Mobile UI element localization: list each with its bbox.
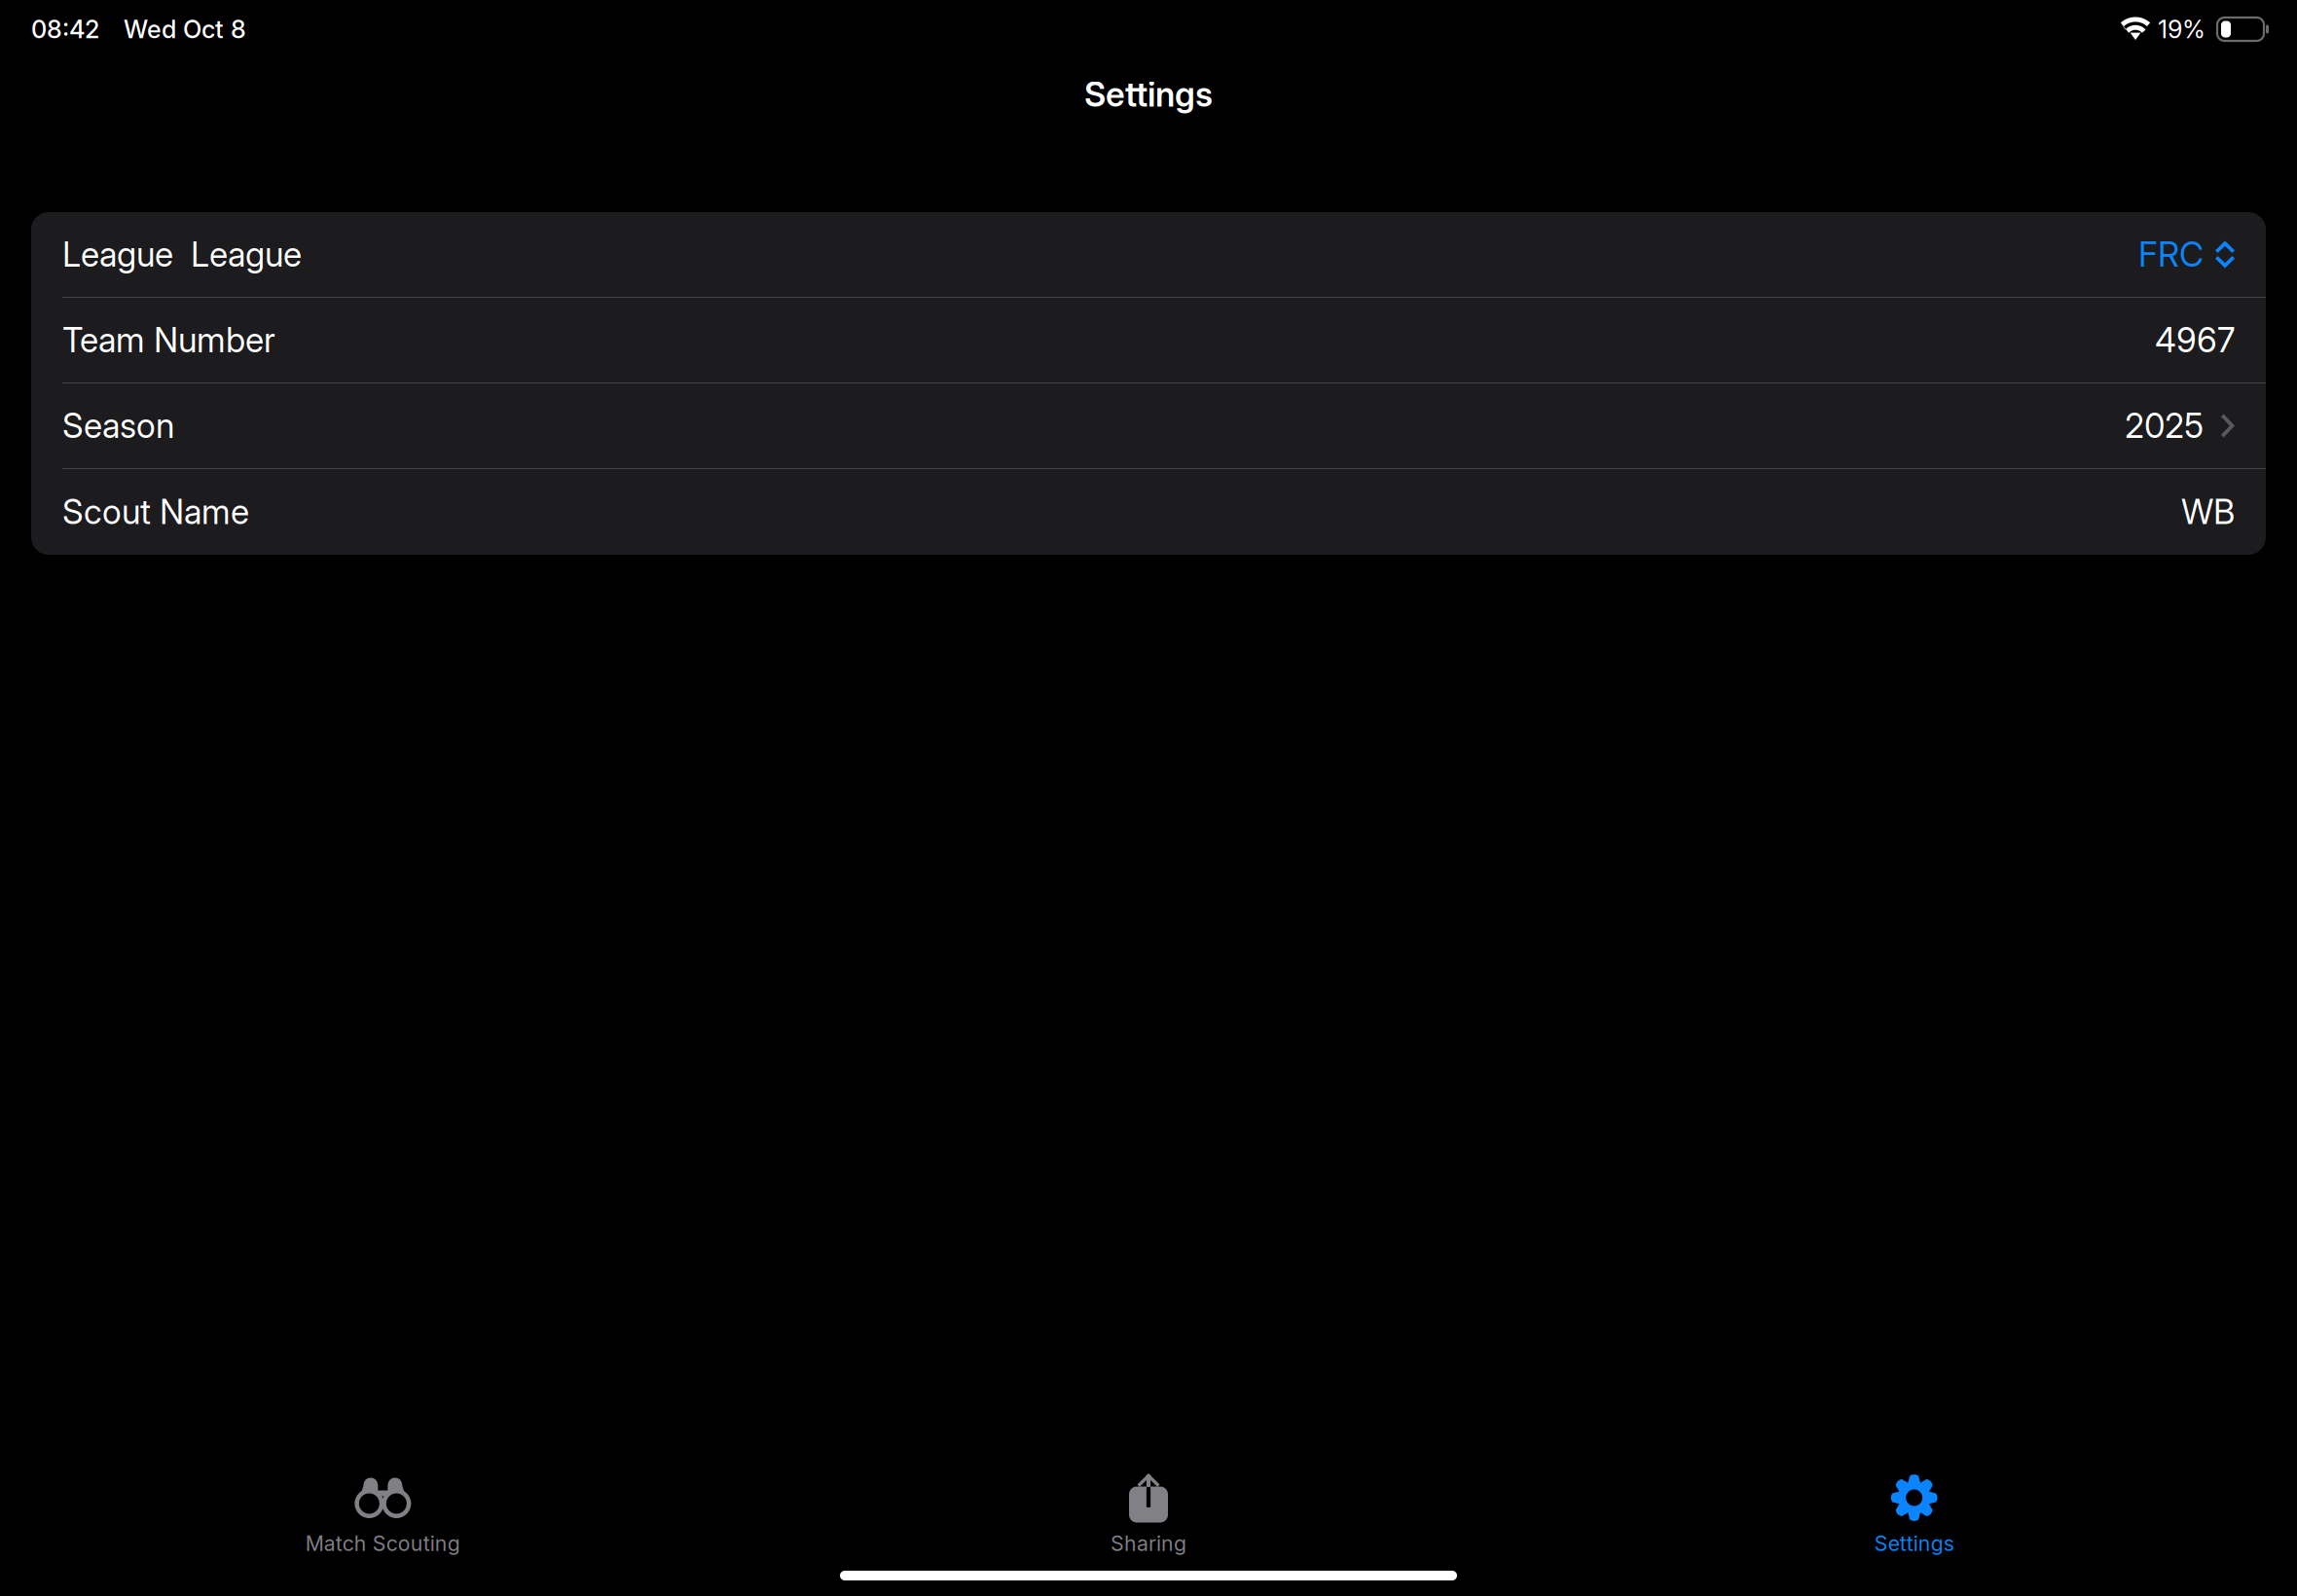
staticText: Settings <box>1874 1531 1954 1556</box>
staticText: Sharing <box>1111 1531 1186 1556</box>
button[interactable]: Match Scouting <box>0 1472 766 1566</box>
staticText: Team Number <box>62 320 275 360</box>
staticText: FRC <box>2138 234 2204 275</box>
staticText: Wed Oct 8 <box>124 14 246 44</box>
staticText: 4967 <box>2155 320 2235 360</box>
staticText: League League <box>62 234 302 275</box>
button[interactable]: Settings <box>1531 1472 2297 1566</box>
staticText: Match Scouting <box>305 1531 460 1556</box>
button[interactable]: Season <box>31 383 2266 468</box>
button[interactable]: League League <box>31 212 2266 297</box>
button[interactable]: Sharing <box>766 1472 1531 1566</box>
staticText: 19% <box>2158 14 2206 44</box>
staticText: Season <box>62 405 174 446</box>
button[interactable]: Scout Name <box>31 469 2266 555</box>
button[interactable]: Team Number <box>31 298 2266 382</box>
staticText: 08:42 <box>31 14 99 44</box>
staticText: WB <box>2181 491 2235 532</box>
staticText: Scout Name <box>62 491 249 532</box>
staticText: Settings <box>1084 74 1213 115</box>
staticText: 2025 <box>2125 405 2204 446</box>
